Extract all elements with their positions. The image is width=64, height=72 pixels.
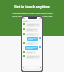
button[interactable] xyxy=(26,51,36,54)
staticText: Conversations with your team and your cu… xyxy=(12,11,53,17)
button[interactable] xyxy=(26,42,38,45)
staticText: Get in touch anytime xyxy=(14,4,50,9)
button[interactable]: Message input xyxy=(22,66,42,69)
button[interactable] xyxy=(26,23,40,27)
button[interactable] xyxy=(26,28,38,32)
button[interactable] xyxy=(25,46,38,50)
button[interactable] xyxy=(27,37,38,41)
button[interactable] xyxy=(26,55,40,59)
button[interactable] xyxy=(22,20,42,22)
button[interactable] xyxy=(26,33,39,36)
